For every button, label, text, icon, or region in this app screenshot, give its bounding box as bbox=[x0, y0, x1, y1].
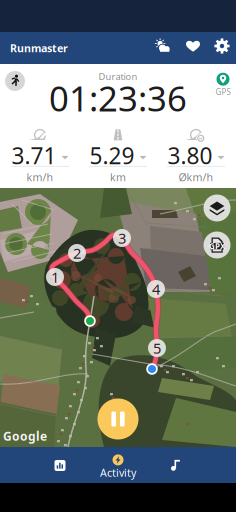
staticText: km/h bbox=[26, 170, 53, 184]
staticText: 5.29 bbox=[89, 140, 134, 170]
staticText: GPX bbox=[209, 241, 225, 251]
button[interactable]: Settings bbox=[208, 32, 236, 60]
staticText: 1 bbox=[51, 267, 59, 287]
staticText: Økm/h bbox=[178, 170, 213, 184]
staticText: Activity bbox=[100, 465, 136, 480]
button[interactable]: Weather bbox=[149, 32, 177, 60]
button[interactable]: Export GPX bbox=[203, 231, 230, 258]
button[interactable]: Statistics bbox=[31, 447, 89, 483]
staticText: 4 bbox=[152, 279, 160, 299]
staticText: Duration bbox=[98, 70, 137, 83]
button[interactable]: 3.71 bbox=[1, 122, 79, 184]
button[interactable]: Pause bbox=[97, 398, 138, 439]
staticText: 3.80 bbox=[167, 140, 212, 170]
button[interactable]: Map layers bbox=[203, 194, 230, 221]
button[interactable]: Favourites bbox=[179, 32, 207, 60]
staticText: 2 bbox=[73, 243, 81, 263]
staticText: 3 bbox=[118, 228, 126, 248]
staticText: 5 bbox=[153, 338, 161, 358]
button[interactable]: 3.80 bbox=[157, 122, 235, 184]
staticText: km bbox=[110, 170, 126, 184]
staticText: GPS bbox=[215, 87, 230, 97]
staticText: Google bbox=[3, 428, 47, 444]
staticText: 3.71 bbox=[11, 140, 56, 170]
button[interactable]: Music bbox=[147, 447, 205, 483]
button[interactable]: Activity bbox=[89, 447, 147, 483]
button[interactable]: 5.29 bbox=[79, 122, 157, 184]
staticText: Runmaster bbox=[10, 41, 68, 55]
staticText: 01:23:36 bbox=[49, 75, 187, 121]
